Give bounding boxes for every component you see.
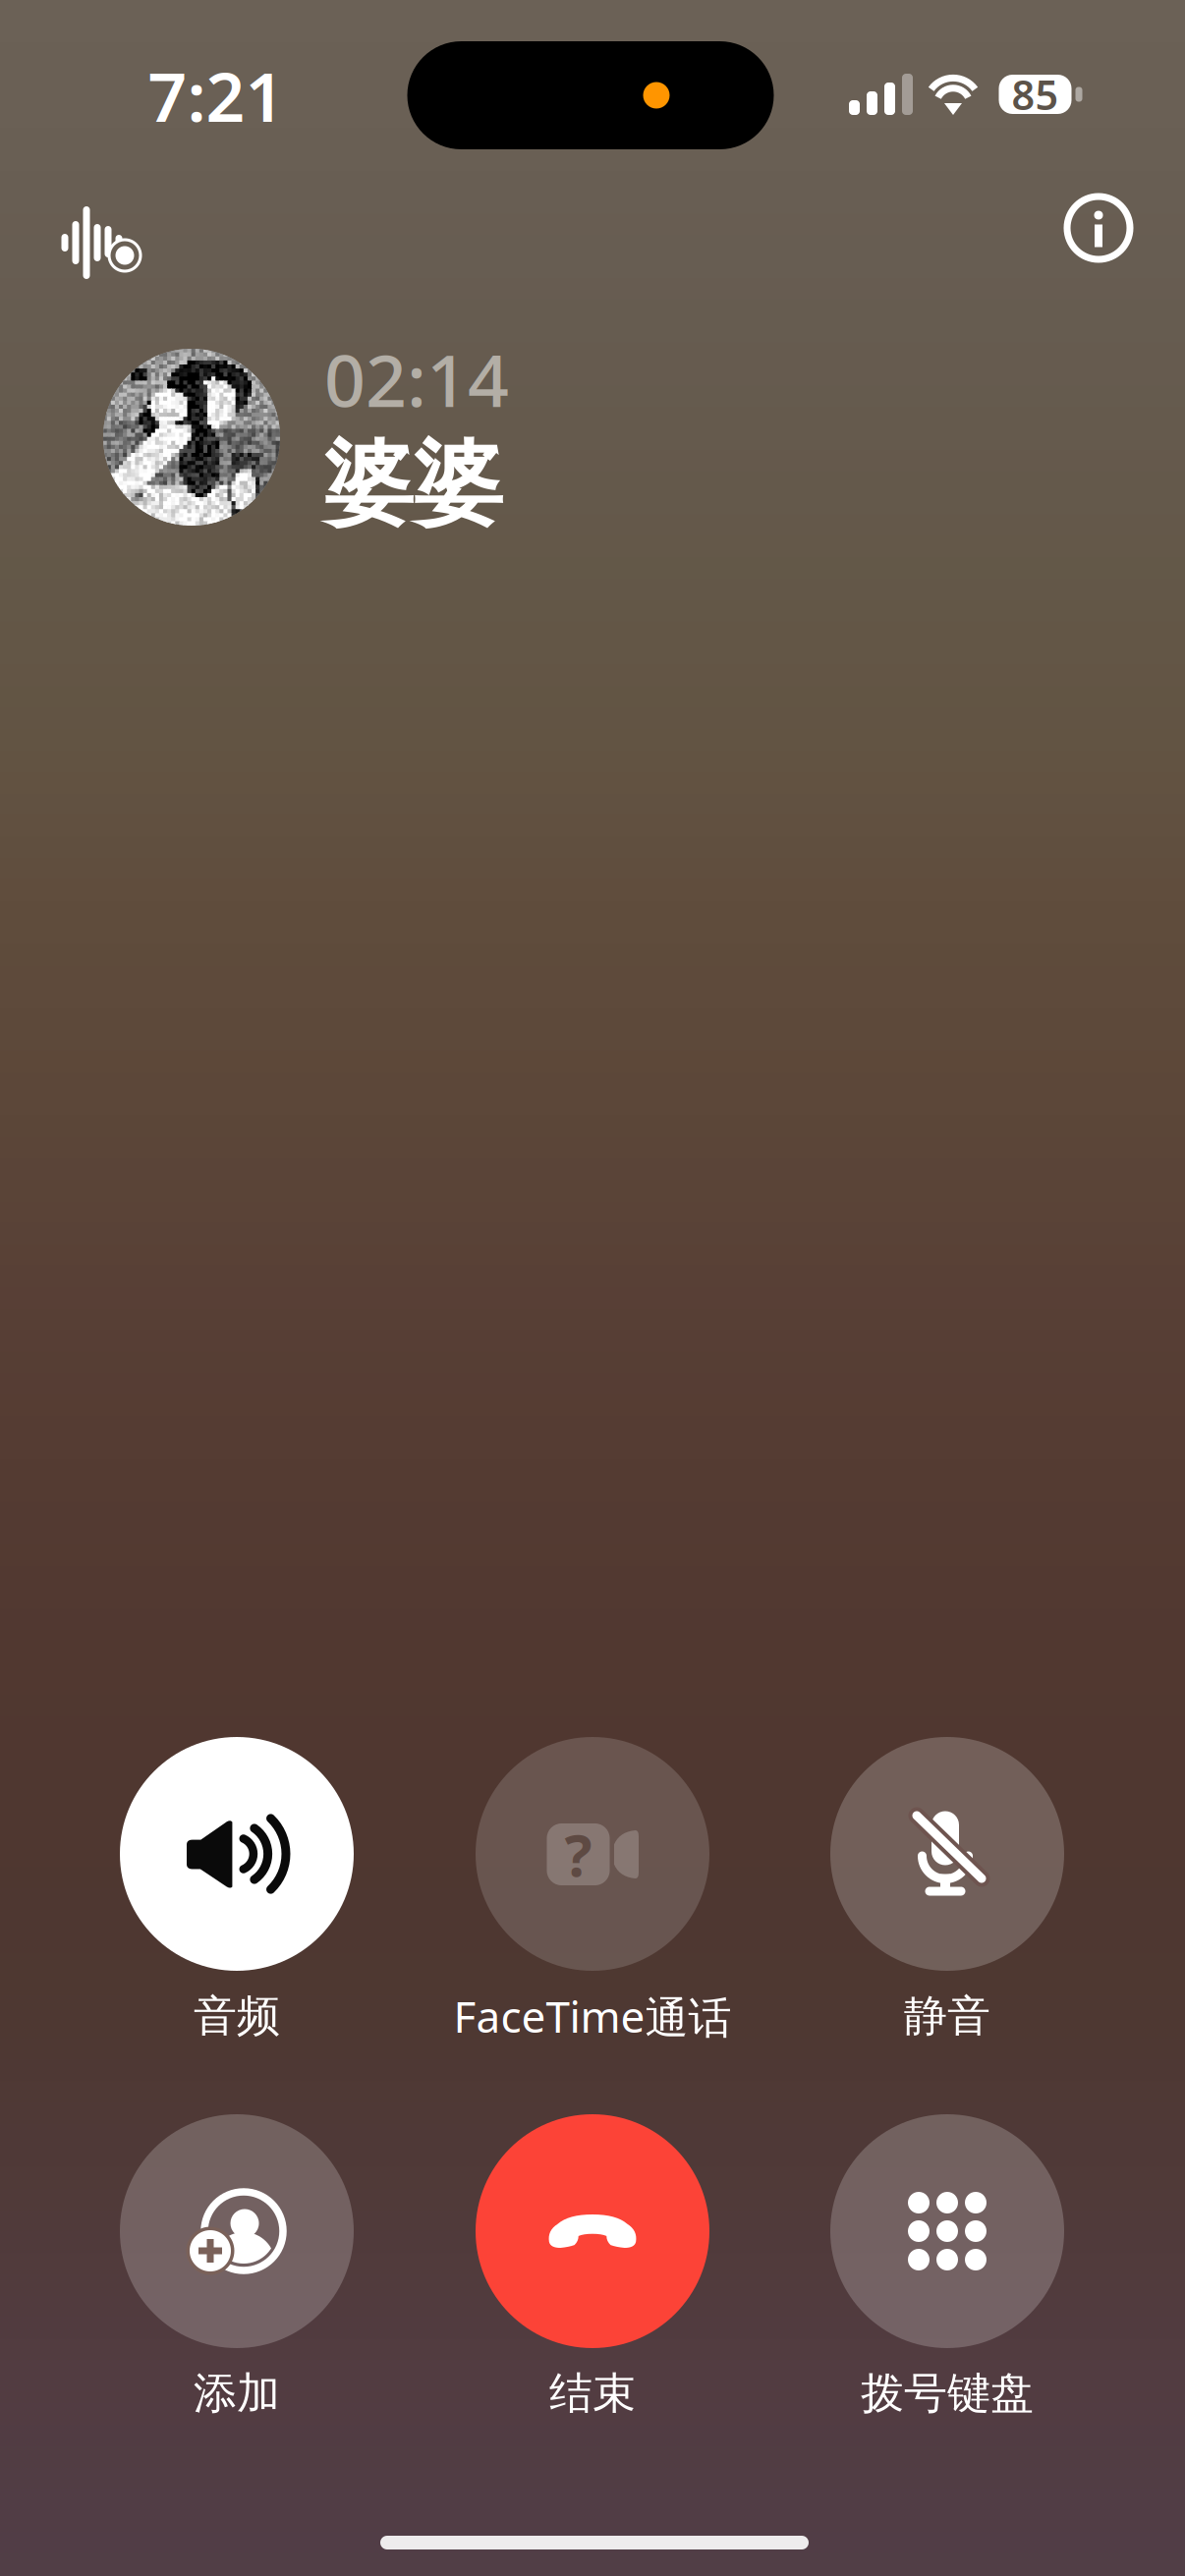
button[interactable]: 拨号键盘	[830, 2114, 1064, 2423]
button[interactable]: 添加	[120, 2114, 354, 2423]
staticText: 静音	[904, 1989, 990, 2043]
button[interactable]: 音频	[120, 1737, 354, 2045]
button[interactable]: Audio routing	[36, 176, 164, 300]
button[interactable]: 结束	[476, 2114, 709, 2423]
staticText: 婆婆	[324, 430, 503, 539]
staticText: 02:14	[324, 331, 509, 427]
staticText: FaceTime通话	[453, 1987, 732, 2045]
staticText: ?	[564, 1816, 592, 1893]
staticText: 7:21	[148, 50, 284, 141]
staticText: 添加	[194, 2367, 280, 2420]
button[interactable]: Call info	[1040, 169, 1157, 287]
button[interactable]: ?	[476, 1737, 709, 2045]
staticText: 85	[1012, 67, 1059, 121]
staticText: 结束	[549, 2367, 636, 2420]
button[interactable]: 静音	[830, 1737, 1064, 2045]
staticText: 音频	[194, 1989, 280, 2043]
staticText: 拨号键盘	[861, 2367, 1034, 2420]
